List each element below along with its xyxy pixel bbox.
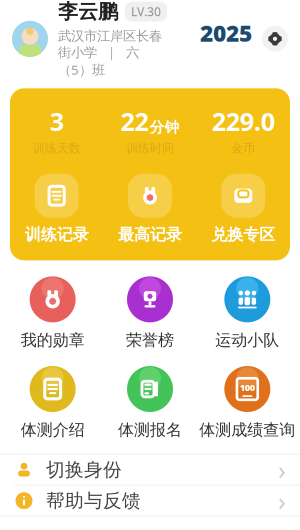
button[interactable]: 我的勋章 <box>4 270 101 356</box>
button[interactable]: 切换身份 <box>0 455 300 486</box>
staticText: 体测成绩查询 <box>199 420 295 440</box>
button[interactable]: 设置 <box>262 26 288 52</box>
staticText: 训练天数 <box>33 141 81 156</box>
button[interactable]: 兑换专区 <box>197 174 290 244</box>
staticText: 3 <box>50 104 64 138</box>
staticText: 我的勋章 <box>21 330 85 350</box>
staticText: 武汉市江岸区长春街小学 ｜ 六（5）班 <box>58 28 162 78</box>
staticText: 体测介绍 <box>21 420 85 440</box>
staticText: 229.0 <box>212 104 275 138</box>
button[interactable]: 帮助与反馈 <box>0 486 300 516</box>
staticText: 22 <box>120 104 148 138</box>
staticText: 100 <box>240 381 255 394</box>
staticText: 李云鹏 <box>58 0 118 24</box>
staticText: 荣誉榜 <box>126 330 174 350</box>
staticText: 切换身份 <box>46 458 122 481</box>
button[interactable]: 运动小队 <box>199 270 296 356</box>
staticText: 最高记录 <box>118 225 182 244</box>
staticText: LV.30 <box>131 4 161 19</box>
staticText: 金币 <box>231 141 255 156</box>
staticText: 训练记录 <box>25 225 89 244</box>
button[interactable]: 最高记录 <box>103 174 197 244</box>
staticText: › <box>278 453 286 486</box>
staticText: 兑换专区 <box>211 225 275 244</box>
button[interactable]: 体测报名 <box>101 360 199 446</box>
button[interactable]: 100 <box>199 360 296 446</box>
staticText: 分钟 <box>149 118 179 136</box>
button[interactable]: 荣誉榜 <box>101 270 199 356</box>
staticText: 体测报名 <box>118 420 182 440</box>
staticText: 训练时间 <box>126 141 174 156</box>
button[interactable]: 体测介绍 <box>4 360 101 446</box>
staticText: › <box>278 484 286 517</box>
staticText: 运动小队 <box>215 330 279 350</box>
staticText: 帮助与反馈 <box>46 489 141 512</box>
button[interactable]: 训练记录 <box>10 174 103 244</box>
staticText: 2025 <box>200 18 252 48</box>
